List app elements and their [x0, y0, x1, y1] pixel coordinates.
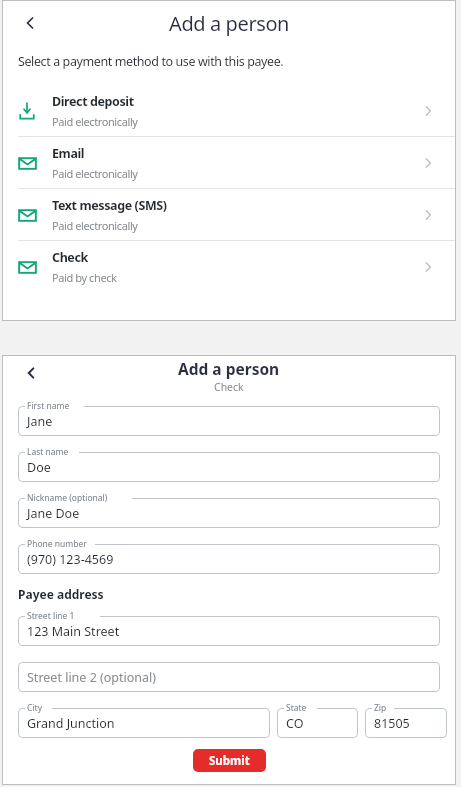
staticText: State	[286, 702, 307, 714]
staticText: First name	[27, 400, 70, 412]
staticText: Zip	[374, 702, 387, 714]
button[interactable]: 81505	[365, 708, 447, 738]
staticText: Submit	[209, 753, 250, 769]
staticText: Paid electronically	[52, 114, 138, 129]
staticText: (970) 123-4569	[27, 551, 114, 568]
staticText: Select a payment method to use with this…	[18, 53, 284, 70]
staticText: Grand Junction	[27, 715, 115, 732]
staticText: Last name	[27, 446, 69, 458]
staticText: Check	[214, 380, 244, 394]
staticText: Paid electronically	[52, 166, 138, 181]
staticText: Direct deposit	[52, 93, 134, 110]
staticText: 81505	[374, 715, 410, 732]
staticText: Phone number	[27, 538, 87, 550]
button[interactable]: Grand Junction	[18, 708, 270, 738]
button[interactable]: CO	[277, 708, 358, 738]
button[interactable]: Back	[12, 6, 46, 40]
button[interactable]: Check	[2, 241, 456, 292]
staticText: Add a person	[169, 10, 290, 37]
staticText: 123 Main Street	[27, 623, 120, 640]
button[interactable]: Street line 2 (optional)	[18, 662, 440, 692]
button[interactable]: Back	[14, 357, 46, 389]
staticText: Payee address	[18, 586, 104, 602]
button[interactable]: (970) 123-4569	[18, 544, 440, 574]
staticText: Text message (SMS)	[52, 197, 167, 214]
staticText: Add a person	[178, 358, 280, 379]
staticText: Email	[52, 145, 85, 162]
staticText: Check	[52, 249, 88, 266]
button[interactable]: Jane	[18, 406, 440, 436]
staticText: Jane	[27, 413, 53, 430]
button[interactable]: Direct deposit	[2, 85, 456, 136]
staticText: Doe	[27, 459, 51, 476]
staticText: Paid electronically	[52, 218, 138, 233]
button[interactable]: Jane Doe	[18, 498, 440, 528]
staticText: Paid by check	[52, 270, 117, 285]
staticText: CO	[286, 715, 304, 732]
button[interactable]: Doe	[18, 452, 440, 482]
staticText: Nickname (optional)	[27, 492, 108, 504]
button[interactable]: Text message (SMS)	[2, 189, 456, 240]
staticText: Street line 2 (optional)	[27, 669, 157, 686]
staticText: Street line 1	[27, 610, 75, 622]
staticText: Jane Doe	[27, 505, 80, 522]
staticText: City	[27, 702, 42, 714]
button[interactable]: 123 Main Street	[18, 616, 440, 646]
button[interactable]: Submit	[193, 749, 266, 772]
button[interactable]: Email	[2, 137, 456, 188]
